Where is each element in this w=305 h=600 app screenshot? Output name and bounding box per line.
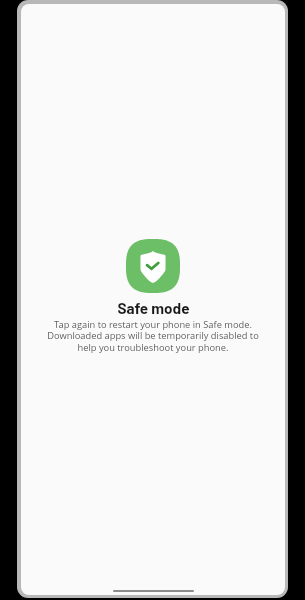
staticText: Safe mode <box>117 299 190 317</box>
other: Safe mode <box>126 239 180 293</box>
staticText: Tap again to restart your phone in Safe … <box>47 318 259 354</box>
